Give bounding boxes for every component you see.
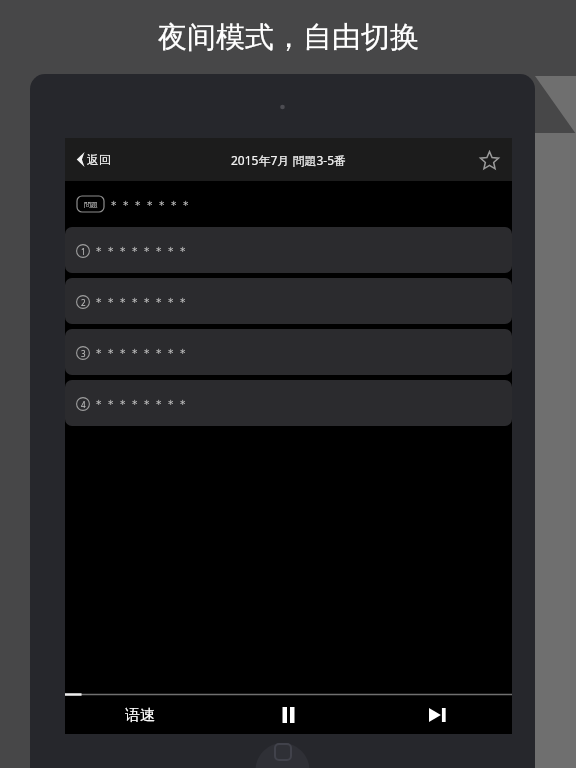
staticText: 1 <box>81 246 86 257</box>
staticText: 4 <box>81 399 86 410</box>
staticText: 2015年7月 問題3-5番 <box>231 152 347 168</box>
staticText: 返回 <box>87 152 111 167</box>
staticText: 2 <box>81 297 86 308</box>
button[interactable]: Next <box>363 696 512 734</box>
staticText: ＊＊＊＊＊＊＊＊ <box>93 396 189 411</box>
button[interactable]: Pause <box>214 696 363 734</box>
button[interactable]: 1 <box>65 227 512 273</box>
button[interactable]: 2 <box>65 278 512 324</box>
staticText: ＊＊＊＊＊＊＊＊ <box>93 345 189 360</box>
staticText: 3 <box>81 348 86 359</box>
button[interactable]: Favorite <box>474 145 504 175</box>
button[interactable]: 4 <box>65 380 512 426</box>
button[interactable]: 問題 <box>65 181 512 227</box>
button[interactable]: 3 <box>65 329 512 375</box>
button[interactable]: 返回 <box>71 145 116 174</box>
staticText: 夜间模式，自由切换 <box>158 19 419 56</box>
button[interactable]: 语速 <box>65 696 214 734</box>
staticText: 语速 <box>125 706 155 725</box>
staticText: 問題 <box>84 200 98 209</box>
staticText: ＊＊＊＊＊＊＊ <box>108 197 192 212</box>
staticText: ＊＊＊＊＊＊＊＊ <box>93 243 189 258</box>
staticText: ＊＊＊＊＊＊＊＊ <box>93 294 189 309</box>
